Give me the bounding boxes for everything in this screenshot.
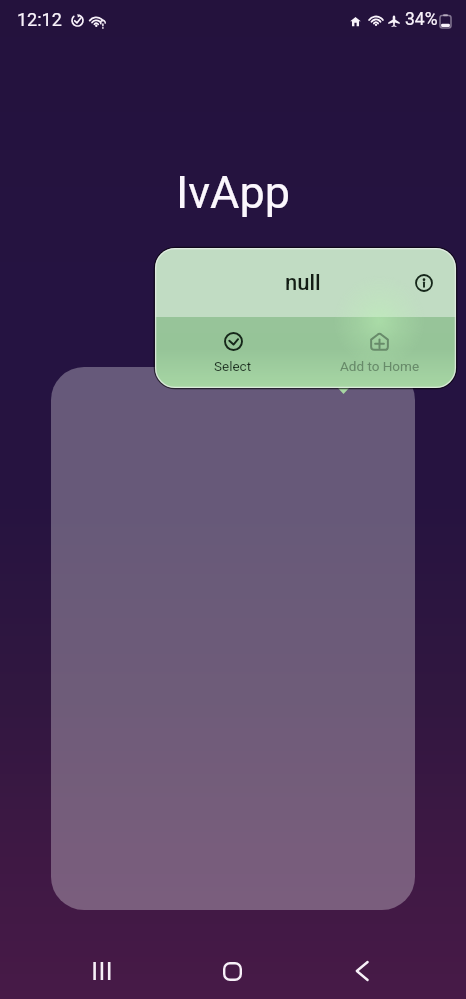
button[interactable]: Add to Home <box>305 317 456 388</box>
button[interactable]: Back <box>324 940 400 998</box>
button[interactable]: Select <box>155 317 305 388</box>
staticText: Add to Home <box>340 358 420 374</box>
staticText: 34% <box>405 9 438 30</box>
button[interactable]: Home <box>194 940 270 998</box>
staticText: 12:12 <box>17 9 62 30</box>
staticText: IvApp <box>0 166 466 219</box>
button[interactable]: Info <box>415 274 433 292</box>
staticText: Select <box>214 358 252 374</box>
staticText: null <box>285 270 321 296</box>
button[interactable]: Recents <box>64 940 140 998</box>
